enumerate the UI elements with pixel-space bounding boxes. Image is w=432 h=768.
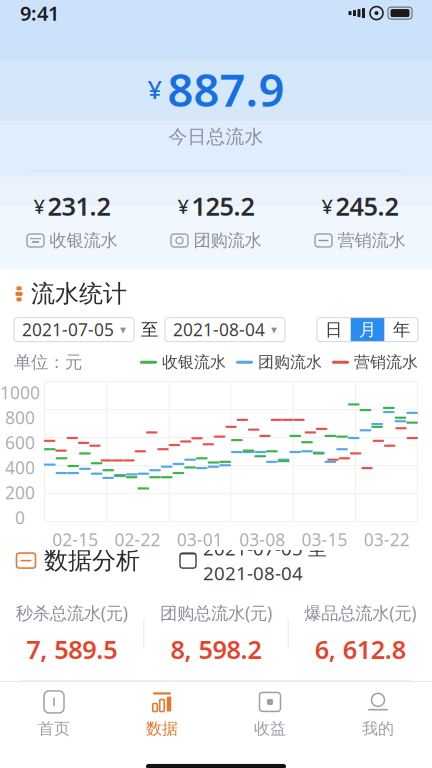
staticText: 887.9 bbox=[167, 59, 284, 119]
staticText: 2021-07-05 至 2021-08-04 bbox=[203, 536, 327, 585]
button[interactable]: 2021-07-05 至 2021-08-04 bbox=[180, 536, 327, 585]
staticText: 流水统计 bbox=[31, 279, 127, 309]
staticText: 245.2 bbox=[335, 189, 398, 223]
staticText: 03-22 bbox=[364, 528, 410, 551]
staticText: 7, 589.5 bbox=[26, 632, 117, 666]
staticText: 我的 bbox=[362, 719, 394, 739]
staticText: 团购总流水(元) bbox=[160, 601, 272, 624]
button[interactable]: 2021-07-05 bbox=[14, 318, 134, 342]
staticText: 营销流水 bbox=[354, 352, 418, 372]
staticText: 收益 bbox=[254, 719, 286, 739]
staticText: 团购流水 bbox=[258, 352, 322, 372]
staticText: 日 bbox=[325, 319, 342, 340]
button[interactable]: 收益 bbox=[216, 682, 324, 745]
staticText: ▾ bbox=[271, 323, 277, 336]
staticText: 400 bbox=[5, 456, 35, 479]
staticText: 03-08 bbox=[239, 528, 285, 551]
staticText: 1000 bbox=[0, 381, 40, 404]
staticText: ▾ bbox=[120, 323, 126, 336]
staticText: 8, 598.2 bbox=[170, 632, 261, 666]
staticText: 秒杀总流水(元) bbox=[16, 601, 128, 624]
button[interactable]: 日 bbox=[317, 318, 350, 342]
staticText: 数据分析 bbox=[44, 546, 140, 575]
staticText: 收银流水 bbox=[162, 352, 226, 372]
staticText: 6, 612.8 bbox=[315, 632, 406, 666]
staticText: ¥ bbox=[147, 72, 161, 106]
staticText: 单位：元 bbox=[14, 352, 82, 373]
staticText: 0 bbox=[15, 506, 25, 529]
staticText: 2021-07-05 bbox=[22, 318, 114, 341]
staticText: 月 bbox=[359, 319, 376, 340]
staticText: 收银流水 bbox=[49, 230, 117, 251]
staticText: 年 bbox=[393, 319, 410, 340]
staticText: ¥ bbox=[177, 193, 188, 219]
staticText: 02-22 bbox=[114, 528, 160, 551]
button[interactable]: 数据 bbox=[108, 682, 216, 745]
staticText: 营销流水 bbox=[337, 230, 405, 251]
staticText: 03-01 bbox=[177, 528, 223, 551]
staticText: 02-15 bbox=[52, 528, 98, 551]
staticText: 125.2 bbox=[191, 189, 254, 223]
button[interactable]: 首页 bbox=[0, 682, 108, 745]
button[interactable]: 年 bbox=[385, 318, 418, 342]
staticText: 爆品总流水(元) bbox=[304, 601, 416, 624]
staticText: ¥ bbox=[33, 193, 44, 219]
staticText: 数据 bbox=[146, 719, 178, 739]
staticText: ¥ bbox=[321, 193, 332, 219]
button[interactable]: 我的 bbox=[324, 682, 432, 745]
staticText: 231.2 bbox=[47, 189, 110, 223]
staticText: 800 bbox=[5, 406, 35, 429]
staticText: 200 bbox=[5, 481, 35, 504]
staticText: 今日总流水 bbox=[168, 125, 263, 148]
staticText: 03-15 bbox=[301, 528, 347, 551]
staticText: 至 bbox=[141, 319, 158, 340]
staticText: 团购平均流水(元) bbox=[151, 691, 280, 714]
button[interactable]: 2021-08-04 bbox=[165, 318, 285, 342]
staticText: 团购流水 bbox=[193, 230, 261, 251]
staticText: 秒杀平均流水(元) bbox=[7, 691, 136, 714]
button[interactable]: 月 bbox=[351, 318, 384, 342]
staticText: 600 bbox=[5, 431, 35, 454]
staticText: 2021-08-04 bbox=[173, 318, 265, 341]
staticText: 爆品平均流水(元) bbox=[295, 691, 424, 714]
staticText: 9:41 bbox=[20, 0, 59, 26]
staticText: 首页 bbox=[38, 719, 70, 739]
